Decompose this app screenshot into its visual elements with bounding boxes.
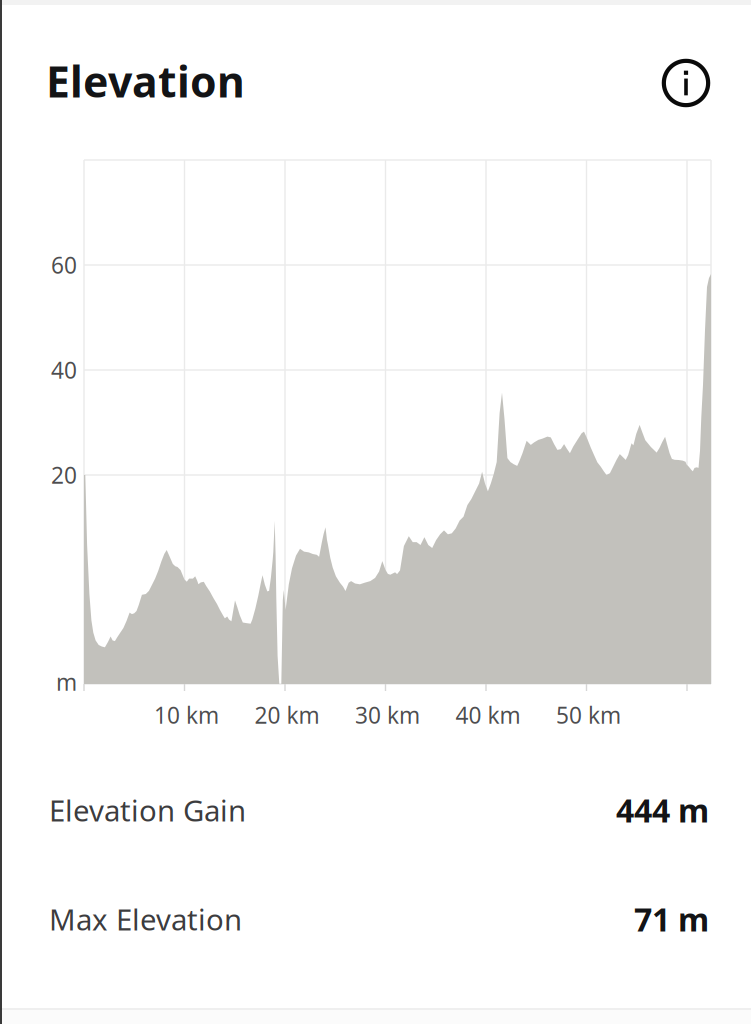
staticText: m [56, 667, 77, 697]
staticText: 20 [51, 460, 77, 490]
staticText: Max Elevation [49, 899, 242, 938]
staticText: 60 [51, 250, 77, 280]
staticText: 71 m [634, 898, 709, 940]
button[interactable]: Info [660, 57, 712, 109]
staticText: 30 km [355, 700, 420, 730]
staticText: 444 m [616, 789, 709, 831]
staticText: Elevation Gain [49, 790, 246, 829]
staticText: Elevation [46, 53, 245, 109]
staticText: 50 km [556, 700, 621, 730]
staticText: 10 km [154, 700, 219, 730]
staticText: 40 [51, 355, 77, 385]
staticText: 20 km [254, 700, 319, 730]
staticText: 40 km [455, 700, 520, 730]
